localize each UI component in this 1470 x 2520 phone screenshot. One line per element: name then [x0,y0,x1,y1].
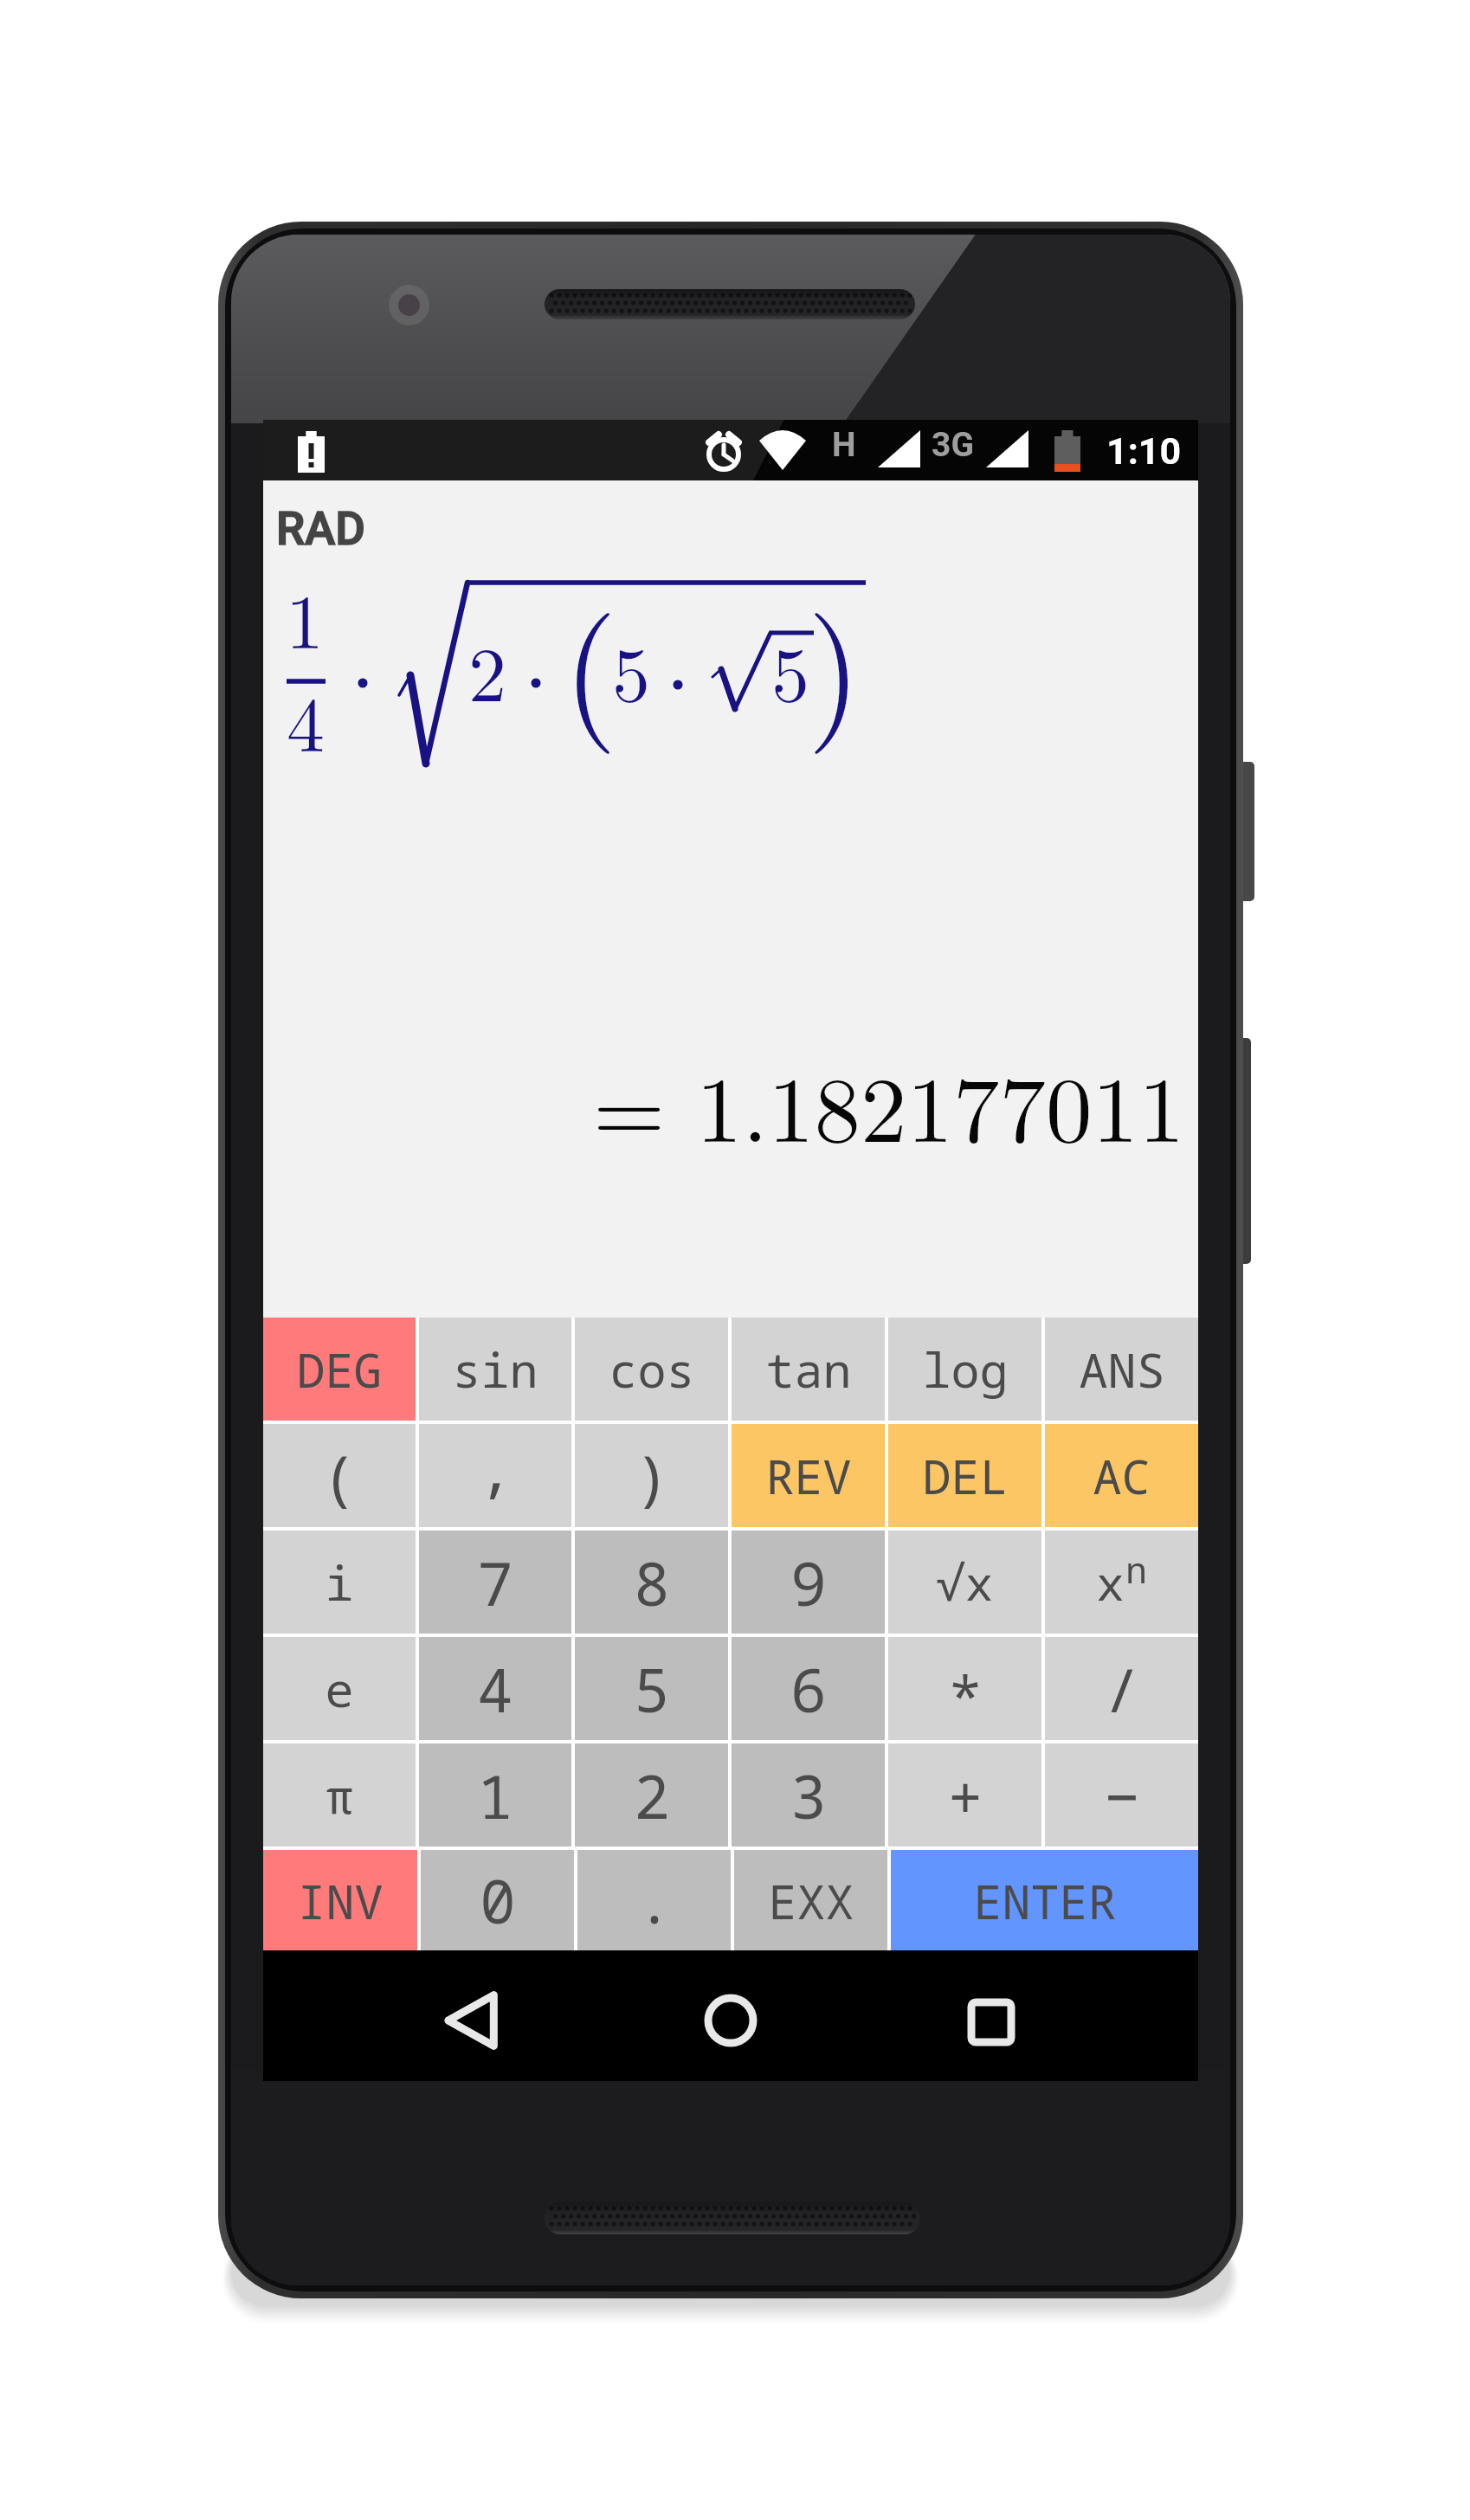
staticText: AC [1093,1443,1151,1508]
staticText: + [947,1755,983,1836]
staticText: = 1.182177011 [593,1037,1185,1169]
staticText: ( [321,1435,358,1517]
button[interactable]: sin [419,1318,571,1421]
staticText: cos [609,1337,695,1402]
staticText: ) [807,559,862,759]
staticText: DEG [296,1337,383,1402]
button[interactable]: Home [670,1960,791,2081]
button[interactable]: 0 [421,1850,574,1950]
button[interactable]: DEG [263,1318,416,1421]
button[interactable]: EXX [734,1850,887,1950]
button[interactable]: . [577,1850,731,1950]
staticText: . [636,1859,673,1941]
button[interactable]: ) [575,1424,728,1527]
button[interactable]: e [263,1637,416,1740]
staticText: DEL [922,1443,1009,1508]
staticText: REV [765,1443,852,1508]
staticText: , [477,1427,513,1508]
button[interactable]: 8 [575,1531,728,1634]
button[interactable]: Recent apps [931,1962,1052,2083]
staticText: 8 [634,1542,670,1623]
button[interactable]: π [263,1743,416,1846]
staticText: e [325,1656,354,1721]
button[interactable]: , [419,1424,571,1527]
button[interactable]: ENTER [891,1850,1198,1950]
staticText: 2 [634,1755,670,1836]
staticText: 3G [932,425,974,465]
button[interactable]: Back [412,1960,533,2081]
staticText: INV [297,1868,384,1933]
staticText: EXX [768,1868,854,1933]
button[interactable]: AC [1045,1424,1198,1527]
button[interactable]: 3 [732,1743,885,1846]
button[interactable]: x [1045,1531,1198,1634]
staticText: 4 [287,666,326,774]
button[interactable]: log [888,1318,1041,1421]
button[interactable]: REV [732,1424,885,1527]
staticText: 2 [468,615,507,724]
staticText: 1 [286,563,325,671]
staticText: 5 [634,1648,670,1730]
staticText: ENTER [973,1868,1117,1933]
staticText: * [947,1655,983,1737]
staticText: RAD [276,502,365,556]
staticText: 1:10 [1106,429,1182,473]
button[interactable]: i [263,1531,416,1634]
button[interactable]: 7 [419,1531,571,1634]
button[interactable]: cos [575,1318,728,1421]
button[interactable]: 2 [575,1743,728,1846]
staticText: 6 [790,1648,827,1730]
button[interactable]: √x [888,1531,1041,1634]
staticText: H [832,425,856,465]
button[interactable]: 9 [732,1531,885,1634]
button[interactable]: 1 [419,1743,571,1846]
button[interactable]: ANS [1045,1318,1198,1421]
staticText: i [325,1550,354,1614]
staticText: 3 [790,1755,827,1836]
staticText: ANS [1079,1337,1165,1402]
staticText: log [922,1337,1009,1402]
staticText: 5 [771,615,810,724]
staticText: ( [563,559,618,759]
button[interactable]: − [1045,1743,1198,1846]
staticText: sin [452,1337,538,1402]
button[interactable]: 5 [575,1637,728,1740]
button[interactable]: / [1045,1637,1198,1740]
button[interactable]: + [888,1743,1041,1846]
staticText: / [1104,1648,1140,1730]
button[interactable]: 6 [732,1637,885,1740]
staticText: 7 [477,1542,513,1623]
staticText: 9 [790,1542,827,1623]
staticText: n [1125,1544,1148,1594]
staticText: π [325,1763,354,1827]
staticText: tan [765,1337,852,1402]
staticText: − [1104,1755,1140,1836]
staticText: ) [634,1435,670,1517]
button[interactable]: * [888,1637,1041,1740]
staticText: √x [936,1550,994,1614]
button[interactable]: ( [263,1424,416,1527]
button[interactable]: 4 [419,1637,571,1740]
staticText: 0 [480,1859,516,1941]
button[interactable]: DEL [888,1424,1041,1527]
staticText: 4 [477,1648,513,1730]
button[interactable]: INV [263,1850,417,1950]
staticText: 1 [477,1755,513,1836]
staticText: x [1096,1550,1125,1614]
button[interactable]: tan [732,1318,885,1421]
staticText: 5 [612,615,651,724]
